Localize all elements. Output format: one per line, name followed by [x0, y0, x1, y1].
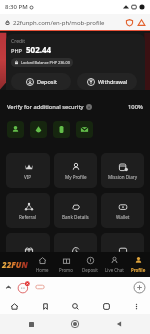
- other: Warning: [137, 18, 146, 27]
- other: Chat: [35, 282, 45, 292]
- button[interactable]: Menu item: [101, 233, 144, 268]
- button[interactable]: Promo: [54, 252, 78, 277]
- button[interactable]: Verification badge: [7, 121, 24, 138]
- button[interactable]: Home: [7, 299, 21, 313]
- other: Info: [86, 104, 92, 110]
- button[interactable]: Referral: [6, 193, 50, 228]
- button[interactable]: Verification badge: [76, 121, 93, 138]
- button[interactable]: Bookmarks: [38, 299, 52, 313]
- other: Add: [133, 281, 146, 294]
- staticText: Referral: [19, 214, 37, 220]
- staticText: 8:30 PM: [5, 3, 28, 11]
- staticText: Wallet: [116, 214, 130, 220]
- button[interactable]: My Profile: [54, 153, 97, 188]
- staticText: Mission Diary: [108, 174, 138, 180]
- button[interactable]: Verification badge: [30, 121, 47, 138]
- button[interactable]: VIP: [6, 153, 50, 188]
- staticText: 22funph.com/en-ph/mob-profile: [13, 19, 105, 27]
- button[interactable]: Bank Details: [54, 193, 97, 228]
- button[interactable]: Mission Diary: [101, 153, 144, 188]
- staticText: Home: [36, 267, 49, 273]
- button[interactable]: Recents: [24, 317, 38, 331]
- button[interactable]: Deposit: [11, 73, 71, 90]
- staticText: My Profile: [65, 174, 87, 180]
- button[interactable]: Close floating widget: [17, 280, 31, 294]
- button[interactable]: Menu item: [6, 233, 50, 268]
- button[interactable]: Live Chat: [102, 252, 126, 277]
- staticText: VIP: [24, 174, 32, 180]
- staticText: 100%: [128, 103, 143, 111]
- button[interactable]: Withdrawal: [77, 73, 137, 90]
- button[interactable]: More options: [129, 299, 143, 313]
- button[interactable]: Verification badge: [53, 121, 70, 138]
- staticText: 502.44: [26, 44, 52, 55]
- button[interactable]: Menu item: [54, 233, 97, 268]
- button[interactable]: Search: [68, 299, 82, 313]
- staticText: Locked Balance PHP 236.00: [21, 60, 70, 65]
- staticText: Deposit: [82, 267, 98, 273]
- button[interactable]: Home: [68, 317, 82, 331]
- button[interactable]: Profile: [126, 252, 150, 277]
- other: Secure: [4, 19, 11, 26]
- button[interactable]: Wallet: [101, 193, 144, 228]
- staticText: Promo: [59, 267, 73, 273]
- staticText: Credit: [11, 38, 26, 45]
- staticText: Profile: [131, 267, 146, 273]
- button[interactable]: Home: [30, 252, 54, 277]
- staticText: PHP: [11, 47, 23, 55]
- button[interactable]: Deposit: [78, 252, 102, 277]
- other: Expand: [4, 283, 13, 292]
- staticText: 22FUN: [2, 259, 28, 270]
- button[interactable]: Tabs: [99, 299, 113, 313]
- staticText: Withdrawal: [98, 78, 128, 85]
- other: Site shield: [125, 18, 134, 27]
- staticText: Verify for additional security: [7, 103, 84, 111]
- staticText: Live Chat: [105, 267, 124, 273]
- staticText: Deposit: [37, 78, 57, 85]
- button[interactable]: Locked Balance PHP 236.00: [14, 60, 70, 65]
- button[interactable]: Back: [112, 317, 126, 331]
- staticText: Bank Details: [62, 214, 89, 220]
